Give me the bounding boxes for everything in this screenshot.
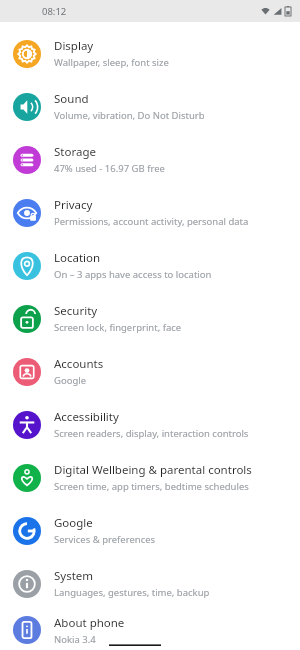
staticText: Nokia 3.4: [54, 633, 96, 646]
other: Storage: [13, 146, 41, 174]
other: Accessibility: [13, 411, 41, 439]
staticText: About phone: [54, 615, 125, 631]
button[interactable]: Privacy: [0, 186, 300, 239]
button[interactable]: Google: [0, 504, 300, 557]
staticText: Storage: [54, 144, 96, 160]
staticText: Permissions, account activity, personal …: [54, 215, 249, 228]
staticText: Display: [54, 38, 94, 54]
staticText: Screen time, app timers, bedtime schedul…: [54, 480, 249, 493]
button[interactable]: Display: [0, 27, 300, 80]
staticText: Google: [54, 374, 87, 387]
button[interactable]: About phone: [0, 610, 300, 650]
button[interactable]: Accessibility: [0, 398, 300, 451]
button[interactable]: Accounts: [0, 345, 300, 398]
staticText: Sound: [54, 91, 89, 107]
other: Location: [13, 252, 41, 280]
staticText: Digital Wellbeing & parental controls: [54, 462, 252, 478]
other: Digital Wellbeing: [13, 464, 41, 492]
staticText: Wallpaper, sleep, font size: [54, 56, 169, 69]
staticText: System: [54, 568, 94, 584]
staticText: 47% used - 16.97 GB free: [54, 162, 165, 175]
other: Security: [13, 305, 41, 333]
staticText: Location: [54, 250, 101, 266]
other: System: [13, 570, 41, 598]
staticText: Volume, vibration, Do Not Disturb: [54, 109, 205, 122]
button[interactable]: Digital Wellbeing: [0, 451, 300, 504]
other: Display: [13, 40, 41, 68]
staticText: Accessibility: [54, 409, 119, 425]
staticText: Services & preferences: [54, 533, 156, 546]
button[interactable]: Sound: [0, 80, 300, 133]
button[interactable]: System: [0, 557, 300, 610]
other: Google: [13, 517, 41, 545]
staticText: Screen readers, display, interaction con…: [54, 427, 249, 440]
staticText: On – 3 apps have access to location: [54, 268, 212, 281]
other: Sound: [13, 93, 41, 121]
other: Accounts: [13, 358, 41, 386]
staticText: Screen lock, fingerprint, face: [54, 321, 182, 334]
button[interactable]: Location: [0, 239, 300, 292]
staticText: Accounts: [54, 356, 104, 372]
button[interactable]: Storage: [0, 133, 300, 186]
button[interactable]: Security: [0, 292, 300, 345]
staticText: Privacy: [54, 197, 93, 213]
staticText: Google: [54, 515, 93, 531]
other: About phone: [13, 616, 41, 644]
other: Privacy: [13, 199, 41, 227]
staticText: Security: [54, 303, 98, 319]
staticText: 08:12: [42, 5, 67, 18]
staticText: Languages, gestures, time, backup: [54, 586, 210, 599]
